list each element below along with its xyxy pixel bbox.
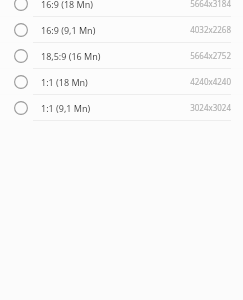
button[interactable]: Select resolution — [0, 95, 243, 120]
other: Select resolution — [14, 101, 28, 115]
staticText: 5664x2752 — [190, 50, 231, 61]
staticText: 1:1 (18 Mn) — [41, 76, 88, 88]
staticText: 16:9 (18 Mn) — [41, 0, 93, 10]
other: Select resolution — [14, 0, 28, 11]
other: Select resolution — [14, 75, 28, 89]
button[interactable]: Select resolution — [0, 0, 243, 16]
button[interactable]: Select resolution — [0, 69, 243, 94]
other: Select resolution — [14, 23, 28, 37]
staticText: 4032x2268 — [190, 24, 231, 35]
staticText: 16:9 (9,1 Mn) — [41, 24, 96, 36]
staticText: 1:1 (9,1 Mn) — [41, 102, 91, 114]
button[interactable]: Select resolution — [0, 43, 243, 68]
button[interactable]: Select resolution — [0, 17, 243, 42]
staticText: 18,5:9 (16 Mn) — [41, 50, 101, 62]
staticText: 4240x4240 — [190, 76, 231, 87]
other: Select resolution — [14, 49, 28, 63]
staticText: 5664x3184 — [190, 0, 231, 9]
staticText: 3024x3024 — [190, 102, 231, 113]
